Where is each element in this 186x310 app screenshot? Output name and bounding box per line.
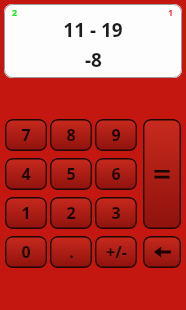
button[interactable]: 4 bbox=[5, 158, 47, 190]
staticText: 8 bbox=[66, 124, 76, 146]
staticText: 1 bbox=[21, 202, 31, 224]
button[interactable]: 2 bbox=[4, 4, 182, 78]
staticText: 7 bbox=[21, 124, 31, 146]
staticText: +/- bbox=[106, 241, 127, 263]
staticText: . bbox=[69, 241, 74, 263]
staticText: 5 bbox=[66, 163, 76, 185]
button[interactable]: 9 bbox=[95, 119, 137, 151]
button[interactable]: 2 bbox=[50, 197, 92, 229]
staticText: 3 bbox=[111, 202, 121, 224]
button[interactable]: Equals bbox=[143, 119, 181, 229]
staticText: 6 bbox=[111, 163, 121, 185]
button[interactable]: 3 bbox=[95, 197, 137, 229]
button[interactable]: . bbox=[50, 236, 92, 268]
staticText: 11 - 19 bbox=[63, 17, 123, 43]
staticText: 2 bbox=[66, 202, 76, 224]
staticText: 4 bbox=[21, 163, 31, 185]
staticText: 9 bbox=[111, 124, 121, 146]
button[interactable]: 5 bbox=[50, 158, 92, 190]
button[interactable]: 8 bbox=[50, 119, 92, 151]
staticText: 1 bbox=[168, 6, 174, 18]
button[interactable]: 0 bbox=[5, 236, 47, 268]
button[interactable]: +/- bbox=[95, 236, 137, 268]
staticText: -8 bbox=[85, 47, 102, 73]
staticText: 2 bbox=[12, 6, 18, 18]
button[interactable]: 6 bbox=[95, 158, 137, 190]
button[interactable]: 7 bbox=[5, 119, 47, 151]
button[interactable]: Backspace bbox=[143, 236, 181, 268]
staticText: 0 bbox=[21, 241, 31, 263]
button[interactable]: 1 bbox=[5, 197, 47, 229]
